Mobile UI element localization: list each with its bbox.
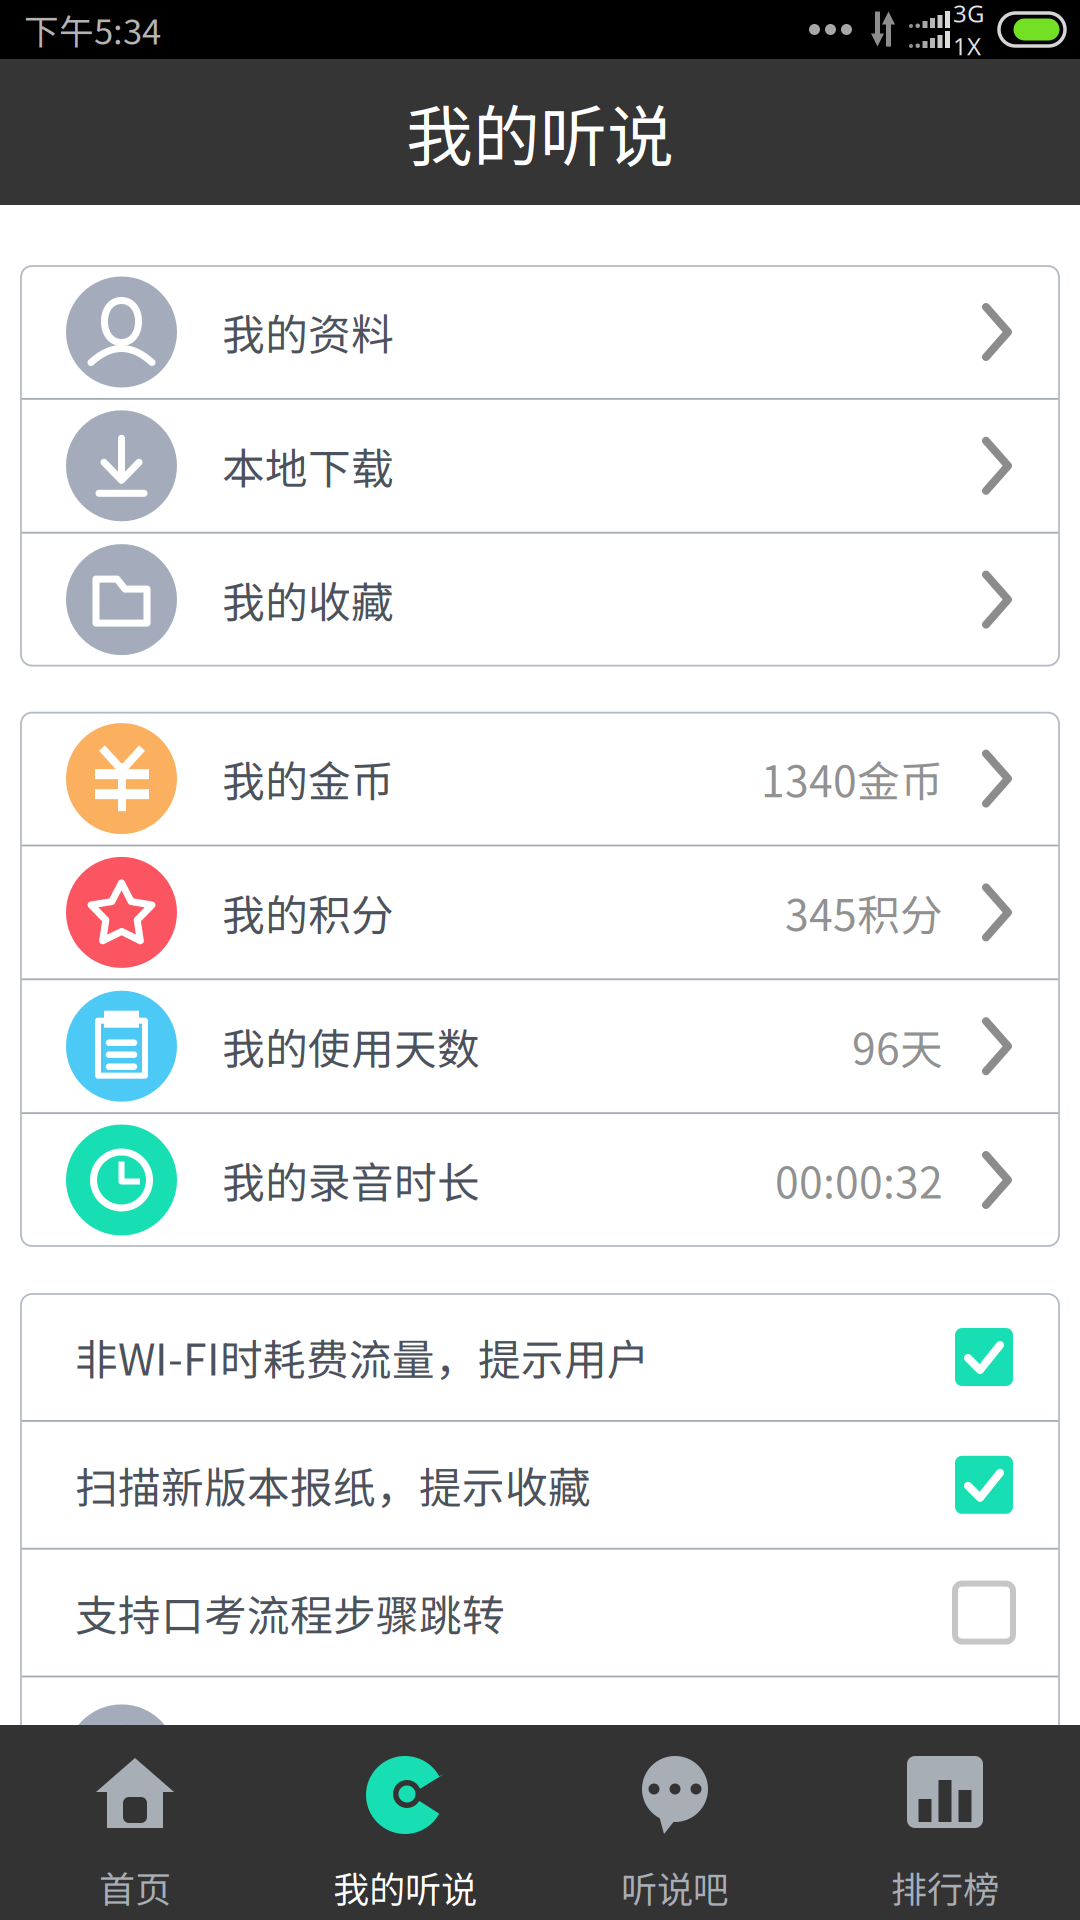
button[interactable]: 我的积分 [21, 846, 1059, 978]
staticText: 非WI-FI时耗费流量，提示用户 [75, 1326, 650, 1388]
button[interactable]: 首页 [0, 1725, 270, 1920]
staticText: 1X [953, 29, 981, 62]
staticText: 345积分 [785, 881, 943, 943]
button[interactable]: 我的资料 [21, 266, 1059, 398]
button[interactable]: 听说吧 [540, 1725, 810, 1920]
staticText: 我的听说 [406, 84, 674, 180]
staticText: 我的使用天数 [222, 1015, 480, 1077]
staticText: 支持口考流程步骤跳转 [75, 1582, 505, 1643]
staticText: 3G [953, 0, 984, 30]
button[interactable]: 我的听说 [270, 1725, 540, 1920]
button[interactable]: 我的收藏 [21, 534, 1059, 666]
button[interactable]: 非WI-FI时耗费流量，提示用户 [21, 1294, 1059, 1420]
staticText: 我的听说 [333, 1861, 477, 1913]
staticText: 排行榜 [891, 1861, 999, 1913]
button[interactable]: 我的录音时长 [21, 1114, 1059, 1246]
staticText: 下午5:34 [24, 4, 161, 55]
staticText: 96天 [852, 1015, 943, 1077]
button[interactable]: 本地下载 [21, 400, 1059, 532]
staticText: 首页 [99, 1861, 171, 1913]
button[interactable]: 账号设置 [21, 1677, 1059, 1842]
button[interactable]: 我的使用天数 [21, 980, 1059, 1112]
button[interactable]: 支持口考流程步骤跳转 [21, 1550, 1059, 1676]
staticText: 我的金币 [222, 748, 394, 809]
staticText: 我的录音时长 [222, 1149, 480, 1211]
button[interactable]: 我的金币 [21, 713, 1059, 845]
staticText: 1340金币 [761, 748, 943, 809]
staticText: 扫描新版本报纸，提示收藏 [75, 1454, 591, 1516]
staticText: 我的资料 [222, 301, 394, 363]
staticText: 我的收藏 [222, 569, 394, 630]
button[interactable]: 排行榜 [810, 1725, 1080, 1920]
staticText: 我的积分 [222, 881, 394, 943]
staticText: 听说吧 [621, 1861, 729, 1913]
staticText: 00:00:32 [775, 1149, 943, 1211]
button[interactable]: 扫描新版本报纸，提示收藏 [21, 1422, 1059, 1548]
staticText: 本地下载 [222, 435, 394, 497]
